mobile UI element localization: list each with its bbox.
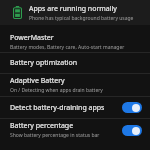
button[interactable]: Adaptive Battery [0,74,150,96]
button[interactable]: Battery status [0,0,150,25]
staticText: Show battery percentage in status bar [10,132,100,139]
staticText: Adaptive Battery [10,76,65,86]
button[interactable]: Battery optimization [0,53,150,73]
staticText: Phone has typical background battery usa… [29,15,134,22]
staticText: Detect battery-draining apps [10,103,105,113]
staticText: Battery optimization [10,58,78,68]
staticText: Battery percentage [10,121,74,131]
staticText: Apps are running normally [29,4,117,14]
button[interactable]: Detect battery-draining apps [0,97,150,118]
staticText: On / Detecting when apps drain battery [10,87,103,94]
staticText: Battery modes, Battery care, Auto-start … [10,44,125,51]
staticText: PowerMaster [10,33,54,43]
other: Battery status [8,6,26,19]
button[interactable]: PowerMaster [0,31,150,52]
button[interactable]: Battery percentage [0,119,150,141]
